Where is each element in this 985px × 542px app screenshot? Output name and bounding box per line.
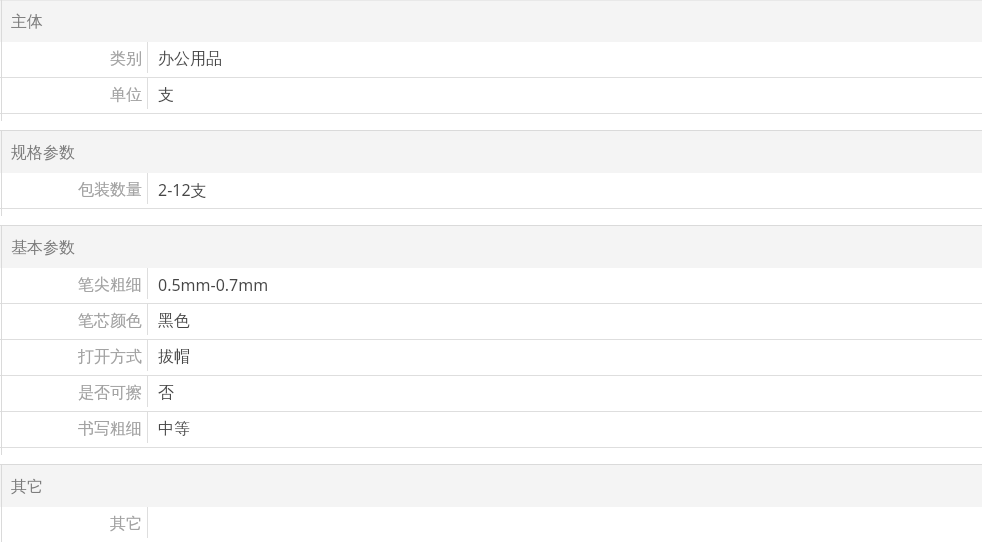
staticText: 否 xyxy=(158,383,174,403)
button[interactable]: 主体 xyxy=(0,0,982,42)
staticText: 中等 xyxy=(158,419,190,439)
button[interactable]: 规格参数 xyxy=(0,131,982,173)
button[interactable]: 笔尖粗细 0.5mm-0.7mm xyxy=(0,268,982,303)
button[interactable]: 单位 支 xyxy=(0,78,982,113)
button[interactable]: 包装数量 2-12支 xyxy=(0,173,982,208)
staticText: 包装数量 xyxy=(78,180,142,200)
staticText: 是否可擦 xyxy=(78,383,142,403)
staticText: 规格参数 xyxy=(11,143,75,163)
button[interactable]: 其它 xyxy=(0,465,982,507)
staticText: 0.5mm-0.7mm xyxy=(158,274,269,296)
staticText: 类别 xyxy=(110,49,142,69)
button[interactable]: 其它 xyxy=(0,507,982,542)
staticText: 2-12支 xyxy=(158,179,207,201)
staticText: 拔帽 xyxy=(158,347,190,367)
staticText: 办公用品 xyxy=(158,49,222,69)
staticText: 其它 xyxy=(110,514,142,534)
staticText: 主体 xyxy=(11,12,43,32)
staticText: 单位 xyxy=(110,85,142,105)
button[interactable]: 书写粗细 中等 xyxy=(0,412,982,447)
button[interactable]: 笔芯颜色 黑色 xyxy=(0,304,982,339)
staticText: 书写粗细 xyxy=(78,419,142,439)
staticText: 基本参数 xyxy=(11,238,75,258)
button[interactable]: 打开方式 拔帽 xyxy=(0,340,982,375)
staticText: 打开方式 xyxy=(78,347,142,367)
button[interactable]: 是否可擦 否 xyxy=(0,376,982,411)
staticText: 笔尖粗细 xyxy=(78,275,142,295)
button[interactable]: 类别 办公用品 xyxy=(0,42,982,77)
staticText: 支 xyxy=(158,85,174,105)
staticText: 其它 xyxy=(11,477,43,497)
button[interactable]: 基本参数 xyxy=(0,226,982,268)
staticText: 笔芯颜色 xyxy=(78,311,142,331)
staticText: 黑色 xyxy=(158,311,190,331)
